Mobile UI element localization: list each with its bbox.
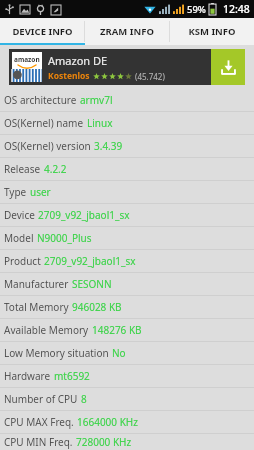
staticText: KSM INFO — [188, 25, 236, 38]
staticText: armv7l — [80, 93, 113, 107]
staticText: 3.4.39 — [94, 139, 123, 153]
staticText: Type — [4, 185, 27, 199]
staticText: 148276 KB — [92, 323, 142, 337]
staticText: user — [30, 185, 51, 199]
button[interactable]: OS architecture — [0, 89, 254, 111]
button[interactable]: Product — [0, 250, 254, 272]
button[interactable]: CPU MIN Freq. — [0, 434, 254, 450]
staticText: mt6592 — [54, 369, 90, 383]
button[interactable]: amazon — [9, 49, 245, 85]
button[interactable]: Hardware — [0, 365, 254, 387]
staticText: CPU MIN Freq. — [4, 435, 73, 449]
staticText: 2709_v92_jbaol1_sx — [38, 208, 130, 222]
staticText: CPU MAX Freq. — [4, 415, 74, 429]
staticText: 728000 KHz — [76, 435, 132, 449]
button[interactable]: OS(Kernel) version — [0, 135, 254, 157]
button[interactable]: Release — [0, 158, 254, 180]
staticText: 12:48 — [223, 2, 250, 16]
staticText: Amazon DE — [48, 53, 108, 68]
staticText: OS(Kernel) version — [4, 139, 91, 153]
button[interactable]: Manufacturer — [0, 273, 254, 295]
staticText: Product — [4, 254, 41, 268]
staticText: amazon — [14, 55, 40, 64]
staticText: 8 — [81, 392, 87, 406]
staticText: Total Memory — [4, 300, 69, 314]
staticText: Low Memory situation — [4, 346, 109, 360]
staticText: 59% — [187, 3, 206, 16]
staticText: SESONN — [72, 277, 112, 291]
staticText: Hardware — [4, 369, 51, 383]
staticText: Number of CPU — [4, 392, 78, 406]
staticText: Linux — [87, 116, 113, 130]
staticText: 946028 KB — [72, 300, 122, 314]
staticText: 4.2.2 — [44, 162, 67, 176]
staticText: Available Memory — [4, 323, 89, 337]
button[interactable]: Type — [0, 181, 254, 203]
staticText: Manufacturer — [4, 277, 69, 291]
button[interactable]: ZRAM INFO — [84, 18, 169, 45]
button[interactable]: Total Memory — [0, 296, 254, 318]
staticText: 2709_v92_jbaol1_sx — [44, 254, 136, 268]
staticText: DEVICE INFO — [12, 25, 73, 38]
staticText: OS architecture — [4, 93, 77, 107]
button[interactable]: DEVICE INFO — [0, 18, 84, 45]
button[interactable]: KSM INFO — [169, 18, 254, 45]
staticText: No — [112, 346, 126, 360]
button[interactable]: OS(Kernel) name — [0, 112, 254, 134]
button[interactable]: Low Memory situation — [0, 342, 254, 364]
button[interactable]: Number of CPU — [0, 388, 254, 410]
button[interactable]: CPU MAX Freq. — [0, 411, 254, 433]
staticText: Kostenlos — [48, 70, 90, 82]
staticText: (45.742) — [135, 71, 165, 82]
button[interactable]: Model — [0, 227, 254, 249]
button[interactable]: Device — [0, 204, 254, 226]
staticText: Model — [4, 231, 34, 245]
button[interactable]: Available Memory — [0, 319, 254, 341]
staticText: Device — [4, 208, 35, 222]
button[interactable]: Install — [211, 49, 245, 85]
staticText: ZRAM INFO — [100, 25, 154, 38]
staticText: 1664000 KHz — [77, 415, 138, 429]
staticText: N9000_Plus — [37, 231, 92, 245]
staticText: Release — [4, 162, 41, 176]
staticText: OS(Kernel) name — [4, 116, 84, 130]
